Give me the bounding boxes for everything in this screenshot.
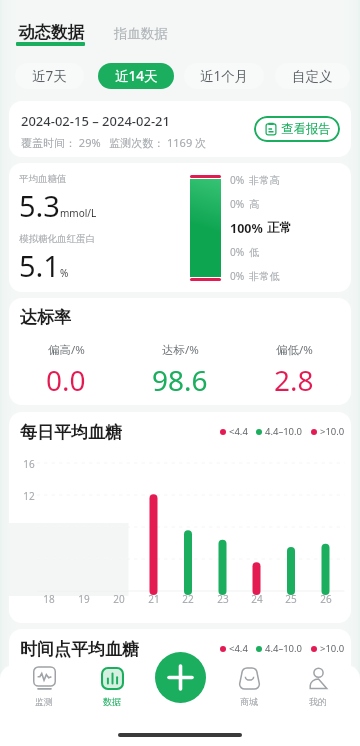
staticText: 2.8 [274, 361, 314, 399]
button[interactable]: 动态数据 [16, 22, 85, 47]
staticText: >10.0 [320, 425, 345, 438]
staticText: 时间点平均血糖 [20, 639, 139, 660]
staticText: >10.0 [320, 642, 345, 655]
staticText: 26 [320, 592, 332, 606]
staticText: 25 [285, 592, 297, 606]
button[interactable]: 我的 [294, 667, 342, 707]
staticText: 0% [230, 269, 245, 283]
button[interactable]: 近1个月 [184, 63, 264, 89]
staticText: 4.4–10.0 [265, 642, 303, 655]
staticText: 16 [23, 457, 35, 471]
button[interactable]: 商城 [225, 667, 273, 707]
staticText: 4.4–10.0 [265, 425, 303, 438]
button[interactable]: 近7天 [15, 63, 84, 89]
staticText: 偏高/% [48, 342, 85, 358]
staticText: 0% [230, 173, 245, 187]
staticText: 数据 [103, 696, 121, 707]
button[interactable]: 监测 [20, 667, 68, 707]
staticText: 我的 [309, 696, 327, 707]
staticText: 覆盖时间： 29% 监测次数： 1169 次 [21, 135, 207, 150]
staticText: 监测 [35, 696, 53, 707]
staticText: 正常 [267, 220, 292, 236]
staticText: 近7天 [32, 67, 67, 85]
staticText: 高 [249, 198, 260, 211]
staticText: 达标/% [162, 342, 199, 358]
staticText: <4.4 [229, 425, 248, 438]
staticText: 商城 [240, 696, 258, 707]
staticText: 每日平均血糖 [20, 422, 122, 443]
button[interactable]: 指血数据 [114, 25, 168, 47]
button[interactable]: 自定义 [275, 63, 350, 89]
staticText: mmol/L [60, 206, 97, 220]
staticText: 指血数据 [114, 25, 168, 42]
staticText: 近14天 [115, 67, 158, 85]
staticText: 18 [43, 592, 55, 606]
staticText: 98.6 [152, 361, 208, 399]
staticText: 5.1 [19, 246, 60, 285]
staticText: 0% [230, 197, 245, 211]
button[interactable]: 查看报告 [254, 116, 340, 142]
staticText: 22 [182, 592, 194, 606]
staticText: 查看报告 [281, 121, 331, 137]
staticText: 平均血糖值 [19, 173, 67, 185]
staticText: 达标率 [20, 307, 71, 328]
staticText: 19 [78, 592, 90, 606]
staticText: 非常高 [249, 174, 280, 187]
staticText: 2024-02-15 – 2024-02-21 [21, 112, 170, 130]
staticText: <4.4 [229, 642, 248, 655]
staticText: 动态数据 [18, 22, 84, 43]
staticText: 非常低 [249, 270, 280, 283]
staticText: 21 [148, 592, 160, 606]
staticText: 23 [217, 592, 229, 606]
staticText: 低 [249, 246, 260, 259]
staticText: 24 [251, 592, 263, 606]
staticText: % [60, 266, 69, 280]
button[interactable]: 近14天 [98, 63, 174, 89]
staticText: 20 [113, 592, 125, 606]
staticText: 自定义 [292, 68, 333, 85]
staticText: 偏低/% [276, 342, 313, 358]
staticText: 100% [230, 220, 263, 236]
staticText: 模拟糖化血红蛋白 [19, 233, 95, 245]
button[interactable]: 数据 [88, 667, 136, 707]
button[interactable]: Add [155, 652, 206, 703]
staticText: 0% [230, 245, 245, 259]
staticText: 近1个月 [200, 67, 249, 85]
staticText: 0.0 [46, 361, 86, 399]
staticText: 12 [23, 489, 35, 503]
staticText: 5.3 [19, 186, 60, 225]
